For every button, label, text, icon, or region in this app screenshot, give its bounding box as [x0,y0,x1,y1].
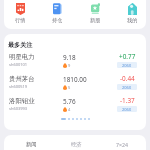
button[interactable]: Mine [127,3,137,24]
staticText: 贵州茅台 [9,75,35,83]
staticText: 9 [68,63,71,68]
staticText: sh603993 [9,106,28,111]
staticText: 1810.00 [63,75,87,84]
button[interactable]: 洛阳钼业 [4,93,146,115]
staticText: -0.44 [120,74,135,83]
staticText: 我的 [127,17,137,24]
staticText: 206X [122,85,132,90]
staticText: 5.76 [63,97,76,106]
staticText: 持仓 [52,17,62,24]
staticText: 5 [68,85,71,90]
staticText: sh600101 [9,62,28,67]
button[interactable]: 明星电力 [4,49,146,71]
button[interactable]: 贵州茅台 [4,71,146,93]
button[interactable]: 7×24 [116,141,128,148]
staticText: 经济 [71,141,82,148]
staticText: 4 [68,107,71,112]
staticText: 9.18 [63,53,76,62]
staticText: 206X [122,63,132,68]
button[interactable]: Positions [52,3,62,24]
button[interactable]: Quotes [15,3,25,24]
staticText: 明星电力 [9,53,35,61]
staticText: 新闻 [26,141,37,148]
staticText: 206X [122,107,132,112]
staticText: sh600519 [9,84,28,89]
staticText: 7×24 [116,141,128,148]
staticText: 最多关注 [8,41,33,49]
button[interactable]: 新闻 [26,141,37,148]
staticText: -1.37 [120,96,135,105]
staticText: 洛阳钼业 [9,97,35,105]
button[interactable]: New stocks [90,3,100,24]
staticText: +0.77 [119,52,136,61]
staticText: 新股 [90,17,100,24]
button[interactable]: 经济 [71,141,82,148]
staticText: 行情 [15,17,25,24]
